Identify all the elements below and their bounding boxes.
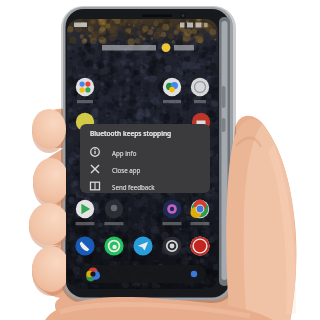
staticText: Bluetooth keeps stopping <box>90 129 172 138</box>
staticText: Send feedback <box>112 183 155 191</box>
button[interactable]: App info <box>86 144 204 161</box>
button[interactable]: Send feedback <box>86 178 204 193</box>
staticText: Close app <box>112 166 141 174</box>
staticText: App info <box>112 149 137 157</box>
button[interactable]: Close app <box>86 161 204 178</box>
